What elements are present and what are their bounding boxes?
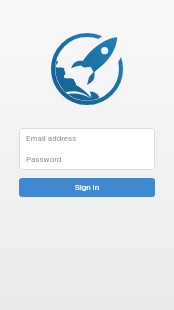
button[interactable]: Email address — [19, 128, 155, 149]
other: Rocket logo — [51, 33, 123, 105]
staticText: Email address — [26, 134, 77, 143]
staticText: Sign In — [75, 183, 100, 192]
staticText: Password — [26, 155, 62, 164]
button[interactable]: Sign In — [19, 178, 155, 197]
button[interactable]: Password — [19, 149, 155, 170]
